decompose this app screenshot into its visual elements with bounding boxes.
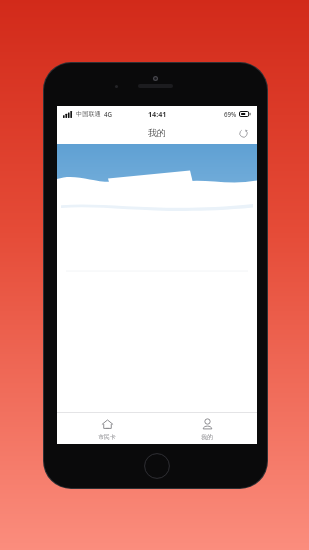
staticText: 我的 <box>201 433 213 440</box>
button[interactable]: Refresh <box>234 124 252 142</box>
button[interactable]: 我的 <box>157 413 257 444</box>
staticText: 14:41 <box>148 109 167 119</box>
staticText: 中国联通 <box>76 110 101 118</box>
staticText: 69% <box>224 110 237 118</box>
staticText: 4G <box>104 110 113 118</box>
staticText: 我的 <box>148 127 166 138</box>
button[interactable] <box>66 199 248 271</box>
button[interactable]: 市民卡 <box>57 413 157 444</box>
staticText: 市民卡 <box>98 433 116 440</box>
